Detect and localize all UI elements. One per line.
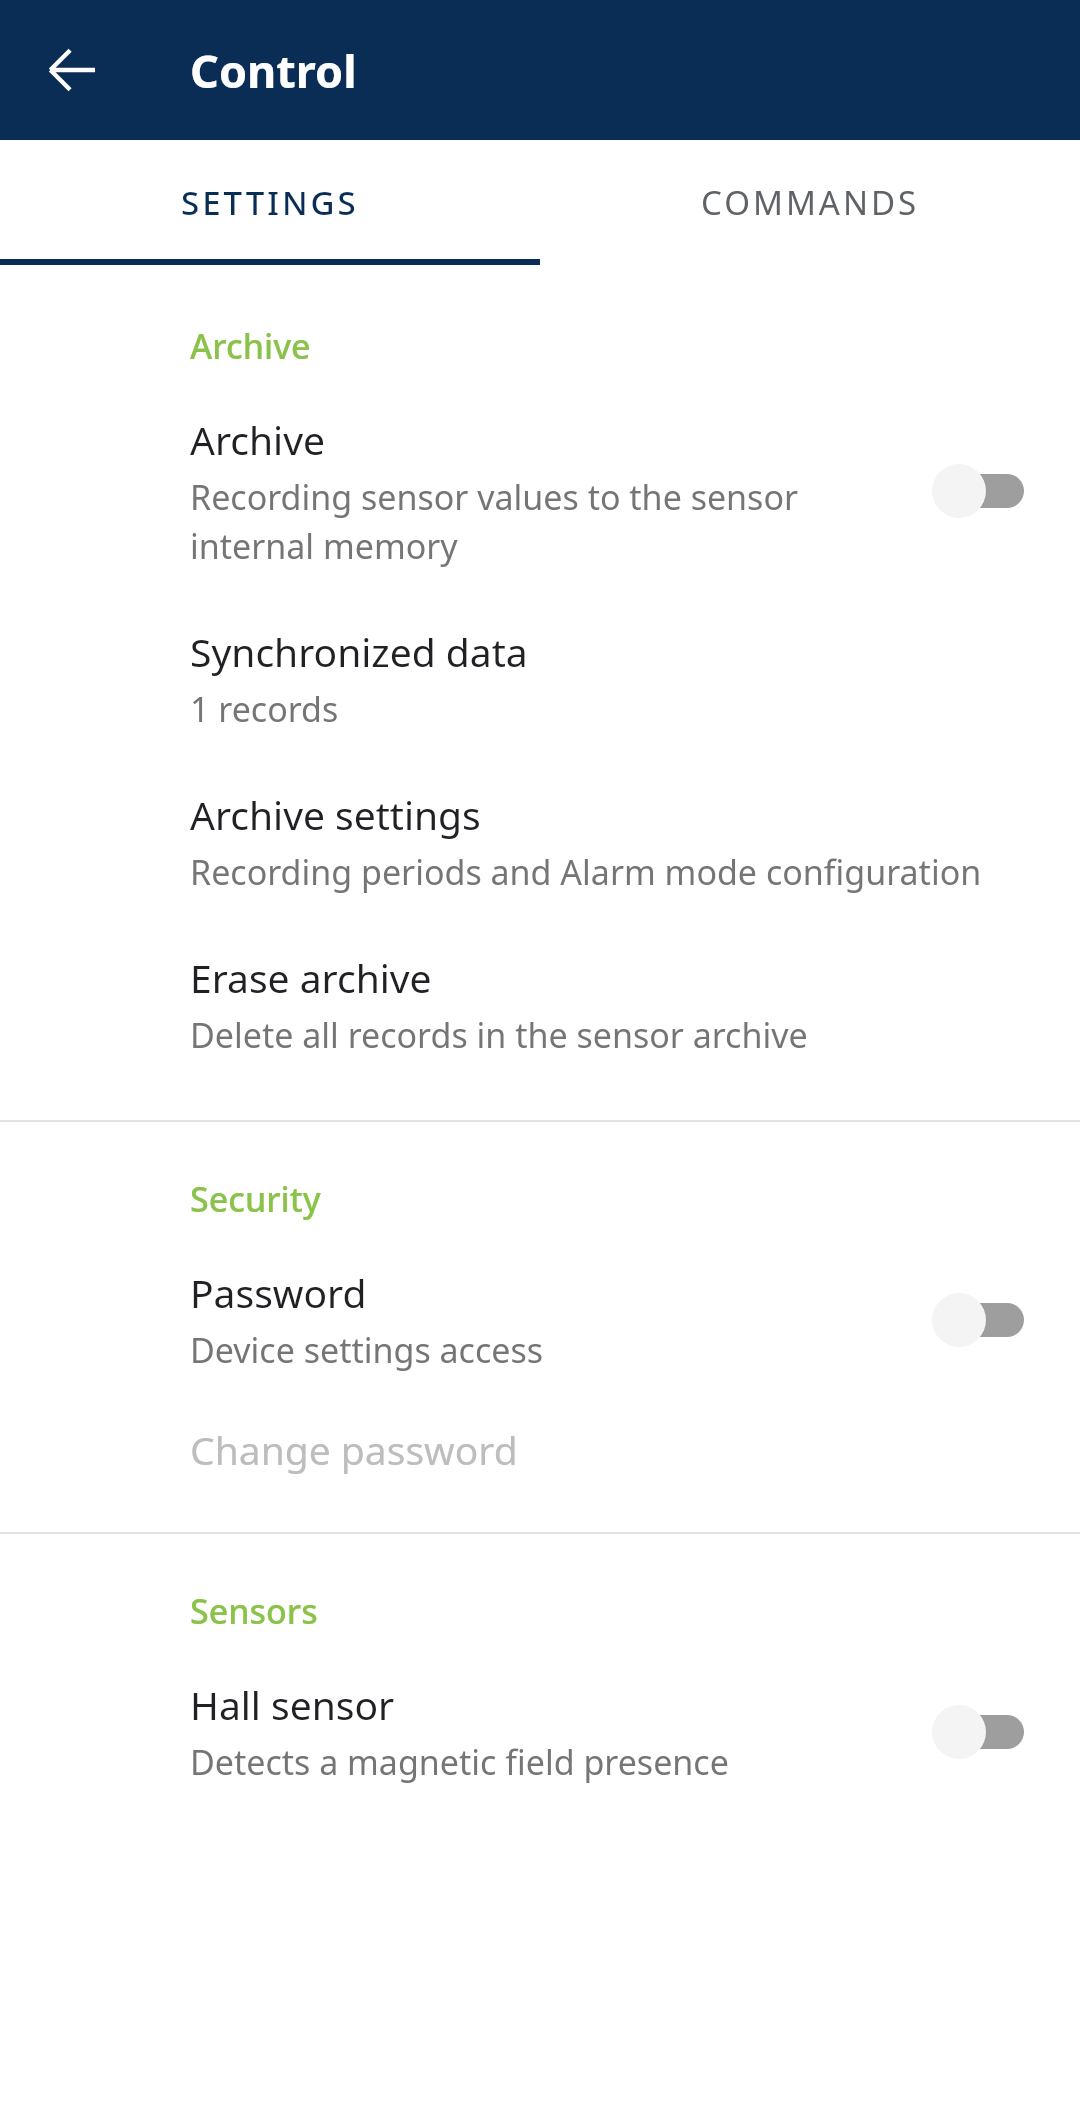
staticText: Device settings access (190, 1327, 543, 1373)
staticText: Password (190, 1266, 367, 1319)
staticText: 1 records (190, 686, 339, 732)
staticText: SETTINGS (181, 180, 359, 225)
staticText: Erase archive (190, 951, 432, 1004)
button[interactable]: Back (22, 20, 122, 120)
button[interactable]: Archive settings (0, 788, 1080, 895)
staticText: Control (190, 40, 357, 101)
staticText: Detects a magnetic field presence (190, 1739, 729, 1785)
button[interactable]: Erase archive (0, 951, 1080, 1058)
staticText: Archive (190, 323, 311, 369)
staticText: Archive settings (190, 788, 481, 841)
button[interactable]: Archive (0, 413, 1080, 569)
staticText: Hall sensor (190, 1678, 395, 1731)
staticText: COMMANDS (701, 180, 920, 225)
button[interactable]: Change password (0, 1423, 1080, 1476)
button[interactable]: SETTINGS (0, 140, 540, 265)
staticText: Archive (190, 413, 325, 466)
staticText: Sensors (190, 1588, 318, 1634)
staticText: Synchronized data (190, 625, 528, 678)
staticText: Security (190, 1176, 321, 1222)
staticText: Delete all records in the sensor archive (190, 1012, 808, 1058)
button[interactable]: COMMANDS (540, 140, 1080, 265)
staticText: Change password (190, 1423, 518, 1476)
button[interactable]: Hall sensor (0, 1678, 1080, 1785)
staticText: Recording sensor values to the sensor in… (190, 474, 916, 569)
button[interactable]: Toggle (932, 1704, 1024, 1760)
button[interactable]: Toggle (932, 463, 1024, 519)
button[interactable]: Toggle (932, 1292, 1024, 1348)
button[interactable]: Synchronized data (0, 625, 1080, 732)
button[interactable]: Password (0, 1266, 1080, 1373)
staticText: Recording periods and Alarm mode configu… (190, 849, 982, 895)
